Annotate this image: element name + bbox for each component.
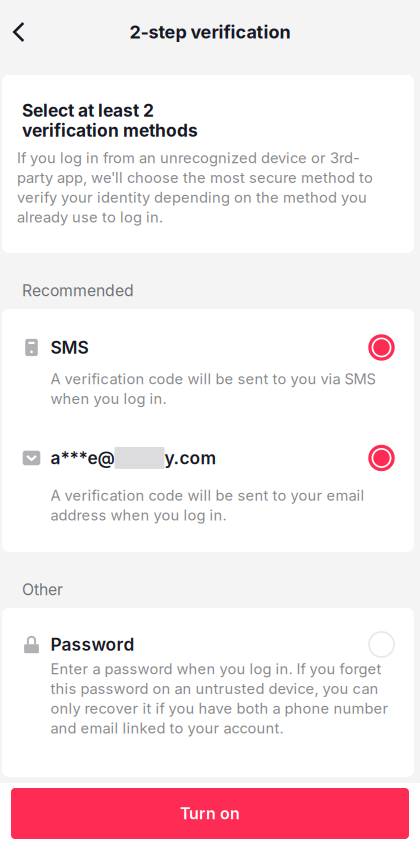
staticText: If you log in from an unrecognized devic… [17, 149, 373, 226]
staticText: Other [22, 580, 63, 599]
staticText: Enter a password when you log in. If you… [50, 660, 388, 737]
staticText: y.com [164, 447, 216, 468]
staticText: Turn on [180, 804, 240, 823]
staticText: SMS [50, 337, 88, 358]
staticText: Password [50, 634, 134, 655]
button[interactable]: Turn on [0, 788, 420, 839]
button[interactable]: a***e@ [2, 426, 414, 552]
staticText: a***e@ [50, 447, 114, 468]
button[interactable]: Back [0, 12, 41, 52]
staticText: Recommended [22, 281, 134, 300]
button[interactable]: Password [2, 608, 414, 777]
staticText: Select at least 2 verification methods [22, 100, 198, 141]
staticText: A verification code will be sent to you … [50, 370, 375, 407]
staticText: 2-step verification [129, 21, 290, 43]
button[interactable]: SMS [2, 309, 414, 426]
staticText: A verification code will be sent to your… [50, 486, 364, 524]
